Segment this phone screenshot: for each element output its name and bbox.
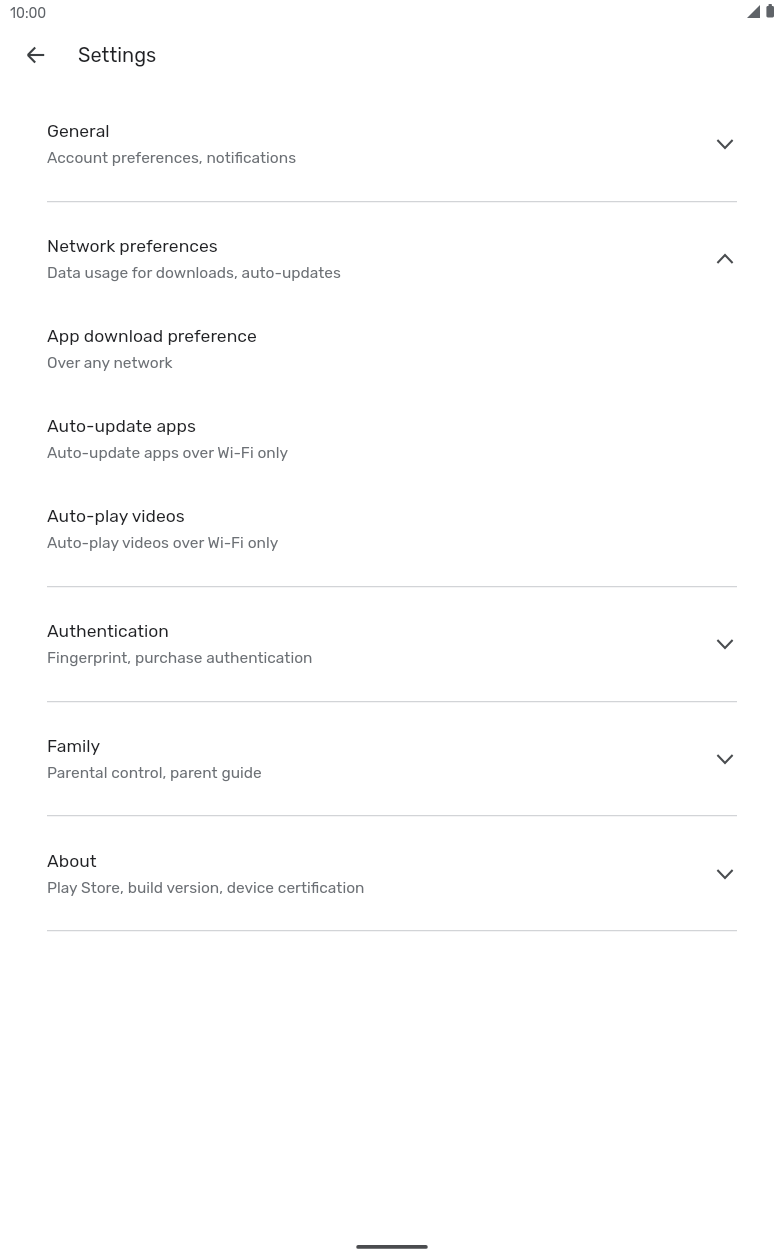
button[interactable]: General [0, 103, 784, 171]
button[interactable]: About [0, 833, 784, 901]
staticText: Network preferences [47, 236, 218, 257]
staticText: Auto-update apps over Wi-Fi only [47, 444, 289, 462]
button[interactable]: Expand section [701, 120, 749, 168]
button[interactable]: Navigate back [12, 31, 60, 79]
button[interactable]: Network preferences [0, 218, 784, 286]
button[interactable]: Expand section [701, 850, 749, 898]
staticText: Authentication [47, 621, 169, 642]
staticText: Fingerprint, purchase authentication [47, 649, 313, 667]
button[interactable]: Expand section [701, 620, 749, 668]
button[interactable]: Authentication [0, 603, 784, 671]
staticText: About [47, 851, 97, 872]
button[interactable]: Auto-update apps [0, 398, 784, 466]
button[interactable]: Collapse section [701, 235, 749, 283]
button[interactable]: App download preference [0, 308, 784, 376]
button[interactable]: Family [0, 718, 784, 786]
staticText: Account preferences, notifications [47, 149, 297, 167]
button[interactable]: Expand section [701, 735, 749, 783]
staticText: Over any network [47, 354, 173, 372]
staticText: Family [47, 736, 101, 757]
staticText: Data usage for downloads, auto-updates [47, 264, 341, 282]
staticText: Auto-play videos [47, 506, 185, 527]
button[interactable]: Auto-play videos [0, 488, 784, 556]
staticText: Play Store, build version, device certif… [47, 879, 365, 897]
staticText: Parental control, parent guide [47, 764, 262, 782]
staticText: 10:00 [10, 5, 47, 22]
staticText: Auto-update apps [47, 416, 196, 437]
staticText: Settings [78, 43, 157, 67]
staticText: General [47, 121, 110, 142]
staticText: Auto-play videos over Wi-Fi only [47, 534, 279, 552]
staticText: App download preference [47, 326, 257, 347]
